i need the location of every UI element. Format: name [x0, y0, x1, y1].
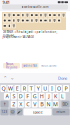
staticText: Z	[12, 101, 15, 108]
staticText: A	[5, 93, 8, 100]
button[interactable]: Editor tool	[3, 18, 7, 23]
staticText: 123	[1, 110, 7, 114]
staticText: J	[48, 93, 49, 100]
button[interactable]: ⌦	[61, 101, 70, 108]
button[interactable]: Nous Suivre	[41, 64, 57, 67]
staticText: I	[51, 85, 53, 92]
staticText: jusq’à l’Devenir SAUVAGE	[3, 35, 34, 39]
button[interactable]: J	[46, 93, 52, 100]
button[interactable]: Editor tool	[7, 13, 11, 17]
button[interactable]: 🎤	[16, 108, 23, 115]
staticText: Done	[58, 76, 67, 81]
button[interactable]: Q	[0, 85, 6, 92]
button[interactable]: Editor tool	[16, 18, 20, 23]
button[interactable]: Editor tool	[21, 18, 25, 23]
button[interactable]: Editor tool	[3, 23, 7, 28]
button[interactable]: E	[14, 85, 20, 92]
button[interactable]: C	[25, 101, 31, 108]
button[interactable]: Editor tool	[30, 18, 34, 23]
staticText: T	[30, 85, 33, 92]
button[interactable]: F	[25, 93, 31, 100]
button[interactable]: Editor tool	[12, 13, 16, 17]
staticText: Y	[37, 85, 40, 92]
button[interactable]: G	[32, 93, 38, 100]
button[interactable]: K	[52, 93, 59, 100]
staticText: M	[53, 101, 58, 108]
button[interactable]: U	[42, 85, 48, 92]
button[interactable]: Editor tool	[25, 18, 29, 23]
button[interactable]: Editor tool	[30, 13, 34, 17]
staticText: H	[40, 93, 44, 100]
button[interactable]: Editor tool	[39, 18, 43, 23]
staticText: O	[57, 85, 61, 92]
button[interactable]: R	[21, 85, 27, 92]
staticText: W	[8, 85, 13, 92]
button[interactable]: O	[56, 85, 62, 92]
button[interactable]: H	[39, 93, 45, 100]
button[interactable]: L	[59, 93, 66, 100]
button[interactable]: V	[32, 101, 38, 108]
staticText: B	[40, 101, 43, 108]
button[interactable]: Done	[56, 76, 67, 81]
button[interactable]: Z	[11, 101, 17, 108]
button[interactable]: Jardins l’Été	[21, 63, 38, 68]
staticText: Jardins l’Été	[22, 64, 37, 67]
button[interactable]: X	[18, 101, 24, 108]
staticText: ⌃	[3, 75, 7, 81]
button[interactable]: Editor tool	[52, 13, 56, 17]
staticText: ☺	[11, 110, 15, 114]
button[interactable]: N	[45, 101, 52, 108]
staticText: space	[32, 109, 42, 114]
button[interactable]: I	[49, 85, 55, 92]
button[interactable]: Editor tool	[25, 13, 29, 17]
button[interactable]: M	[52, 101, 59, 108]
staticText: U	[43, 85, 47, 92]
button[interactable]: A	[4, 93, 10, 100]
button[interactable]: Editor tool	[16, 13, 20, 17]
button[interactable]: Previous field	[3, 75, 7, 81]
button[interactable]: Y	[35, 85, 41, 92]
button[interactable]: S	[11, 93, 17, 100]
button[interactable]: Editor tool	[57, 18, 61, 23]
staticText: R	[23, 85, 26, 92]
button[interactable]: P	[63, 85, 69, 92]
button[interactable]: Editor tool	[43, 13, 47, 17]
button[interactable]: T	[28, 85, 34, 92]
button[interactable]: ↑	[0, 101, 9, 108]
button[interactable]: Editor tool	[62, 13, 66, 17]
button[interactable]: webseauville.com	[2, 4, 68, 10]
button[interactable]: Editor tool	[48, 18, 52, 23]
staticText: E	[16, 85, 19, 92]
button[interactable]: Editor tool	[7, 18, 11, 23]
button[interactable]: W	[7, 85, 13, 92]
button[interactable]: return	[52, 108, 70, 115]
button[interactable]: Editor tool	[43, 18, 47, 23]
button[interactable]: Editor tool	[34, 13, 38, 17]
button[interactable]: Next field	[10, 75, 14, 81]
staticText: 9:41	[2, 0, 9, 5]
staticText: P	[64, 85, 67, 92]
button[interactable]: Editor tool	[3, 13, 7, 17]
staticText: X	[19, 101, 22, 108]
button[interactable]: Editor tool	[12, 18, 16, 23]
button[interactable]: B	[39, 101, 45, 108]
staticText: return	[56, 110, 65, 114]
button[interactable]: Editor tool	[7, 23, 11, 28]
staticText: 🎤	[17, 110, 22, 114]
staticText: Q	[1, 85, 5, 92]
button[interactable]: Editor tool	[21, 13, 25, 17]
staticText: N	[47, 101, 51, 108]
button[interactable]: space	[23, 108, 51, 115]
button[interactable]: Editor tool	[39, 13, 43, 17]
button[interactable]: 123	[0, 108, 9, 115]
button[interactable]: D	[18, 93, 24, 100]
button[interactable]: Nous Rejoins	[3, 62, 20, 69]
button[interactable]: Editor tool	[57, 13, 61, 17]
button[interactable]: Editor tool	[34, 18, 38, 23]
staticText: webseauville.com	[24, 5, 48, 9]
button[interactable]: Editor tool	[48, 13, 52, 17]
button[interactable]: ☺	[9, 108, 16, 115]
staticText: OBTENIR « Résulat_jardi » par la fonctio…	[3, 30, 58, 37]
button[interactable]: Editor tool	[52, 18, 56, 23]
button[interactable]: Editor tool	[12, 23, 16, 28]
